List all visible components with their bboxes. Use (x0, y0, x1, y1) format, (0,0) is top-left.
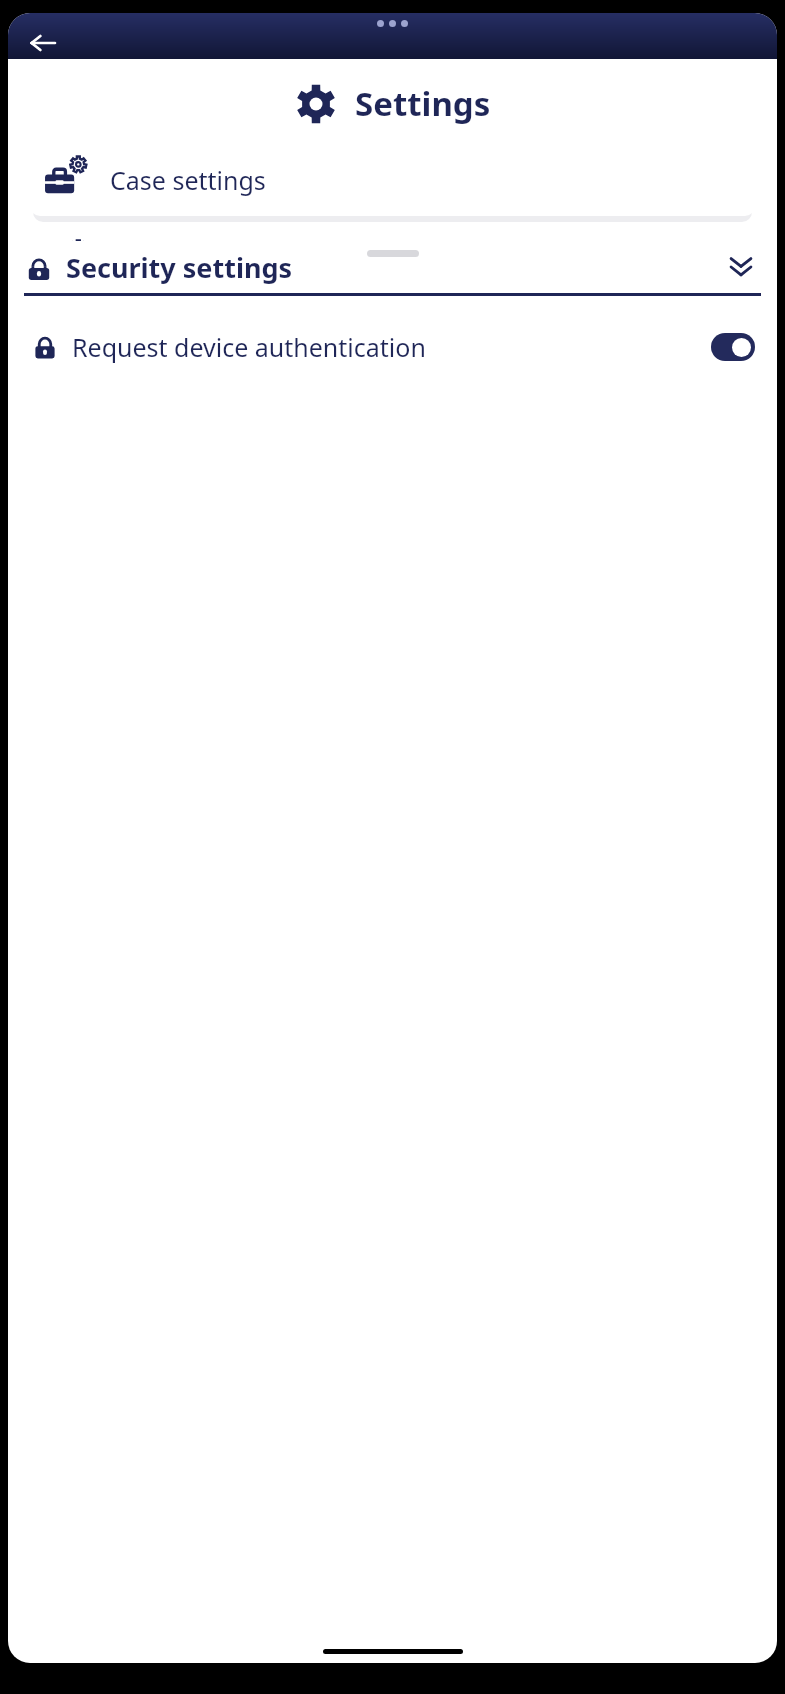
staticText: Map settings (110, 247, 262, 281)
button[interactable]: Map settings (30, 228, 755, 306)
button[interactable]: Request device authentication (8, 320, 777, 374)
staticText: Request device authentication (72, 330, 711, 364)
staticText: Case settings (110, 163, 266, 197)
button[interactable]: Request device authentication toggle (711, 333, 755, 361)
staticText: Phones settings (110, 331, 298, 365)
button[interactable]: Phones settings (30, 312, 755, 390)
staticText: Settings (355, 81, 491, 126)
button[interactable]: Collapse (721, 247, 761, 287)
button[interactable]: Case settings (30, 144, 755, 222)
staticText: Security settings (66, 249, 721, 286)
button[interactable]: Back (24, 27, 62, 59)
